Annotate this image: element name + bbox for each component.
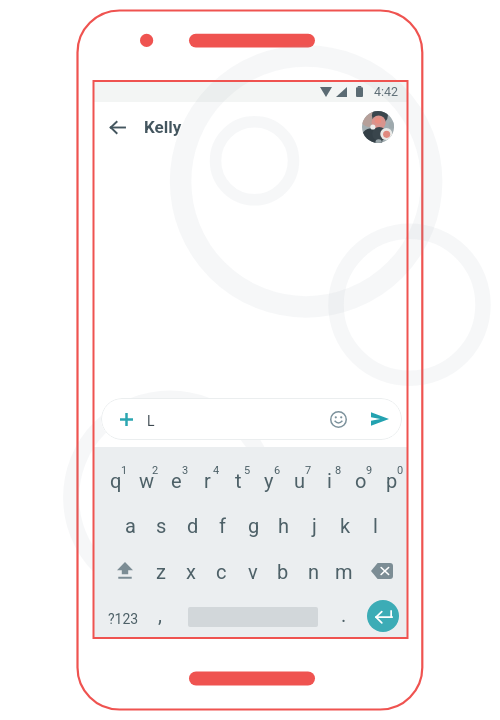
staticText: r	[204, 469, 211, 492]
button[interactable]: 1	[100, 461, 131, 505]
button[interactable]: Back	[103, 113, 131, 141]
staticText: f	[219, 514, 226, 537]
button[interactable]: Enter	[367, 600, 399, 632]
staticText: p	[386, 469, 398, 492]
button[interactable]: ?123	[99, 594, 147, 638]
staticText: 7	[305, 464, 312, 477]
staticText: j	[312, 514, 317, 537]
staticText: L	[147, 413, 155, 429]
button[interactable]: h	[268, 503, 299, 547]
staticText: ?123	[108, 611, 139, 627]
staticText: g	[248, 514, 260, 537]
staticText: 1	[121, 464, 128, 477]
staticText: 6	[274, 464, 281, 477]
staticText: y	[264, 469, 274, 492]
staticText: x	[186, 560, 196, 583]
button[interactable]: s	[146, 503, 177, 547]
button[interactable]: m	[328, 549, 359, 593]
staticText: q	[110, 469, 122, 492]
button[interactable]: a	[115, 503, 146, 547]
staticText: 9	[366, 464, 373, 477]
button[interactable]: x	[175, 549, 206, 593]
button[interactable]: ,	[147, 594, 173, 638]
button[interactable]: Backspace	[364, 549, 400, 593]
staticText: u	[294, 469, 306, 492]
staticText: .	[341, 603, 347, 626]
staticText: 2	[152, 464, 159, 477]
staticText: v	[248, 560, 258, 583]
staticText: 4	[213, 464, 220, 477]
button[interactable]: 6	[253, 461, 284, 505]
staticText: 0	[397, 464, 404, 477]
button[interactable]: Shift	[109, 549, 140, 593]
staticText: d	[187, 514, 199, 537]
button[interactable]: k	[330, 503, 361, 547]
staticText: 4:42	[374, 84, 399, 99]
staticText: k	[340, 514, 351, 537]
button[interactable]: Add attachment	[101, 398, 402, 440]
staticText: w	[139, 469, 155, 492]
button[interactable]: .	[331, 594, 357, 638]
staticText: e	[171, 469, 182, 492]
button[interactable]: Send	[369, 408, 391, 430]
button[interactable]: v	[237, 549, 268, 593]
staticText: m	[335, 560, 353, 583]
button[interactable]: Add attachment	[117, 410, 135, 428]
staticText: c	[216, 560, 227, 583]
staticText: 3	[182, 464, 189, 477]
staticText: n	[308, 560, 320, 583]
button[interactable]: j	[299, 503, 330, 547]
button[interactable]: 2	[131, 461, 162, 505]
button[interactable]: c	[206, 549, 237, 593]
button[interactable]: 8	[314, 461, 345, 505]
button[interactable]: z	[145, 549, 176, 593]
staticText: o	[355, 469, 367, 492]
staticText: 5	[244, 464, 251, 477]
button[interactable]: 9	[345, 461, 376, 505]
button[interactable]: d	[177, 503, 208, 547]
staticText: Kelly	[144, 117, 182, 137]
staticText: ,	[158, 603, 162, 626]
staticText: s	[156, 514, 167, 537]
button[interactable]: 3	[161, 461, 192, 505]
button[interactable]: 7	[284, 461, 315, 505]
staticText: a	[125, 514, 136, 537]
button[interactable]: b	[267, 549, 298, 593]
button[interactable]: f	[207, 503, 238, 547]
button[interactable]: Emoji	[327, 408, 349, 430]
button[interactable]: 5	[223, 461, 254, 505]
button[interactable]: 4	[192, 461, 223, 505]
staticText: l	[373, 514, 378, 537]
button[interactable]: g	[238, 503, 269, 547]
button[interactable]: 0	[376, 461, 407, 505]
staticText: 8	[335, 464, 342, 477]
button[interactable]: Profile photo	[362, 111, 394, 143]
staticText: i	[327, 469, 332, 492]
staticText: t	[235, 469, 242, 492]
button[interactable]: n	[298, 549, 329, 593]
button[interactable]: l	[360, 503, 391, 547]
staticText: h	[278, 514, 290, 537]
staticText: b	[277, 560, 289, 583]
staticText: z	[156, 560, 166, 583]
